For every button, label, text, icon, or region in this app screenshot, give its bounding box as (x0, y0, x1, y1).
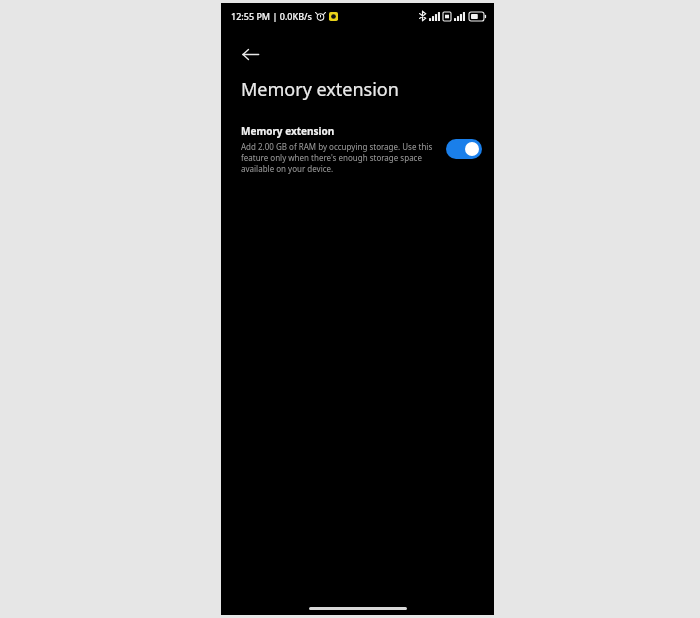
staticText: Add 2.00 GB of RAM by occupying storage.… (241, 141, 438, 174)
staticText: Memory extension (241, 77, 399, 102)
button[interactable]: Memory extension (221, 122, 494, 180)
button[interactable]: Memory extension toggle, on (446, 139, 482, 159)
button[interactable]: Back (233, 37, 267, 71)
staticText: Memory extension (241, 124, 335, 138)
staticText: 12:55 PM | 0.0KB/s (231, 10, 312, 22)
